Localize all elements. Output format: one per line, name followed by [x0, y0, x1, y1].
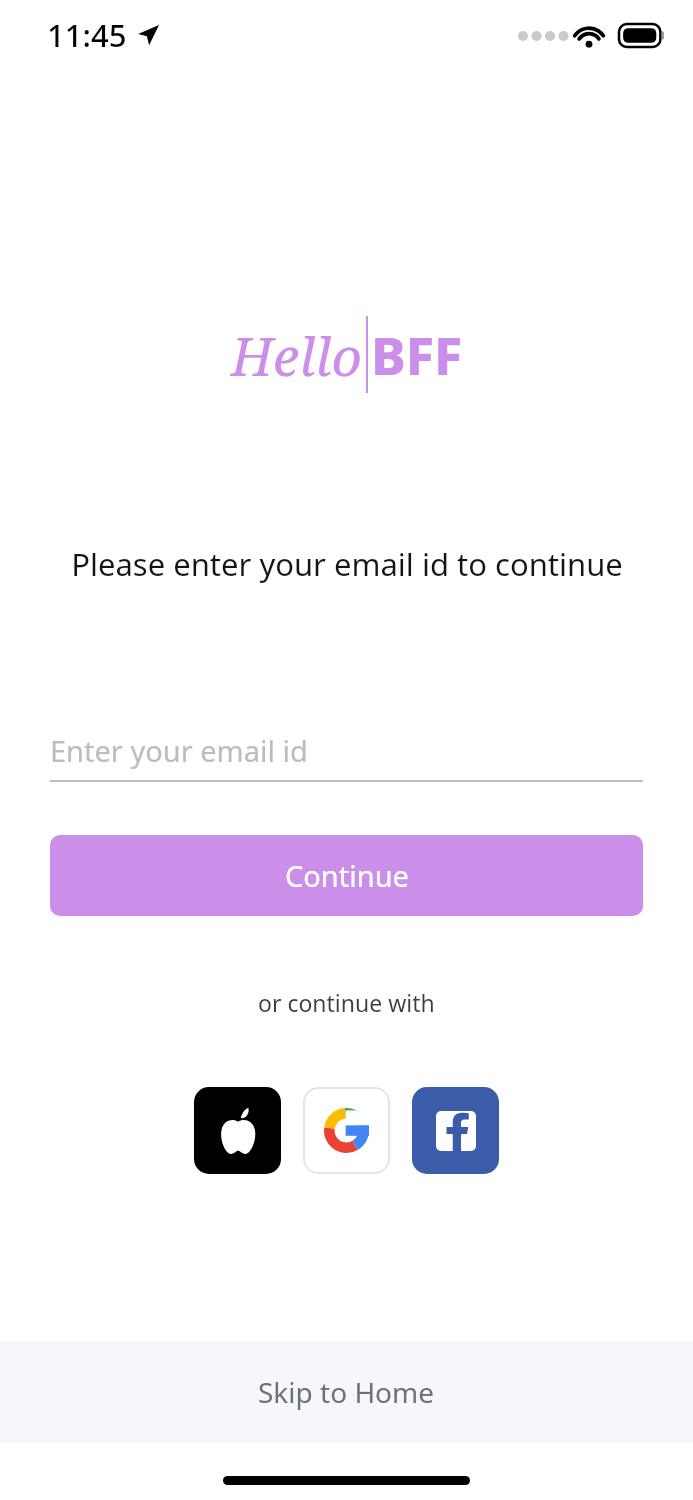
staticText: Enter your email id: [50, 731, 308, 770]
staticText: Skip to Home: [258, 1373, 435, 1411]
staticText: or continue with: [258, 987, 435, 1018]
staticText: Continue: [285, 856, 409, 895]
button[interactable]: Sign in with Google: [303, 1087, 390, 1174]
staticText: 11:45: [47, 14, 127, 56]
button[interactable]: Skip to Home: [0, 1341, 693, 1443]
staticText: Hello: [231, 319, 362, 391]
staticText: BFF: [371, 319, 463, 390]
button[interactable]: Sign in with Facebook: [412, 1087, 499, 1174]
staticText: Please enter your email id to continue: [71, 543, 623, 585]
button[interactable]: Continue: [50, 835, 643, 916]
button[interactable]: Enter your email id: [50, 720, 643, 780]
button[interactable]: Sign in with Apple: [194, 1087, 281, 1174]
